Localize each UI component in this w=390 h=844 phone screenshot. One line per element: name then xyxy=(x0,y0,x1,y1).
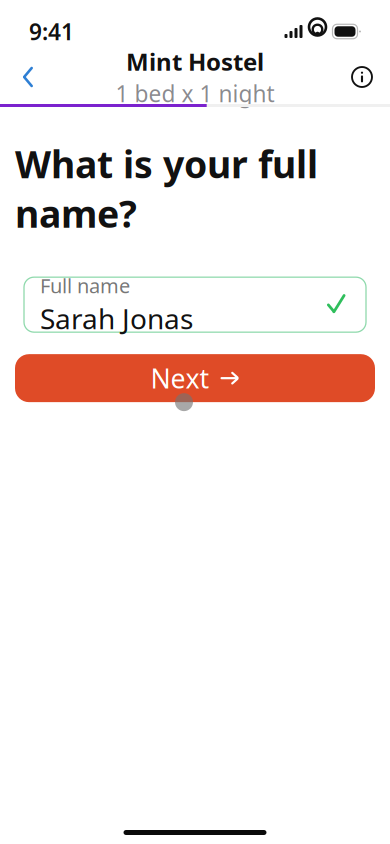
button[interactable]: Information xyxy=(340,55,384,99)
staticText: Mint Hostel xyxy=(126,45,264,77)
staticText: Next xyxy=(150,360,209,396)
staticText: Full name xyxy=(40,272,130,299)
staticText: What is your full name? xyxy=(15,139,318,238)
staticText: Sarah Jonas xyxy=(40,300,193,337)
staticText: 1 bed x 1 night xyxy=(115,78,274,108)
button[interactable]: Next xyxy=(15,354,375,402)
button[interactable]: Back xyxy=(6,55,50,99)
staticText: 9:41 xyxy=(29,16,74,46)
